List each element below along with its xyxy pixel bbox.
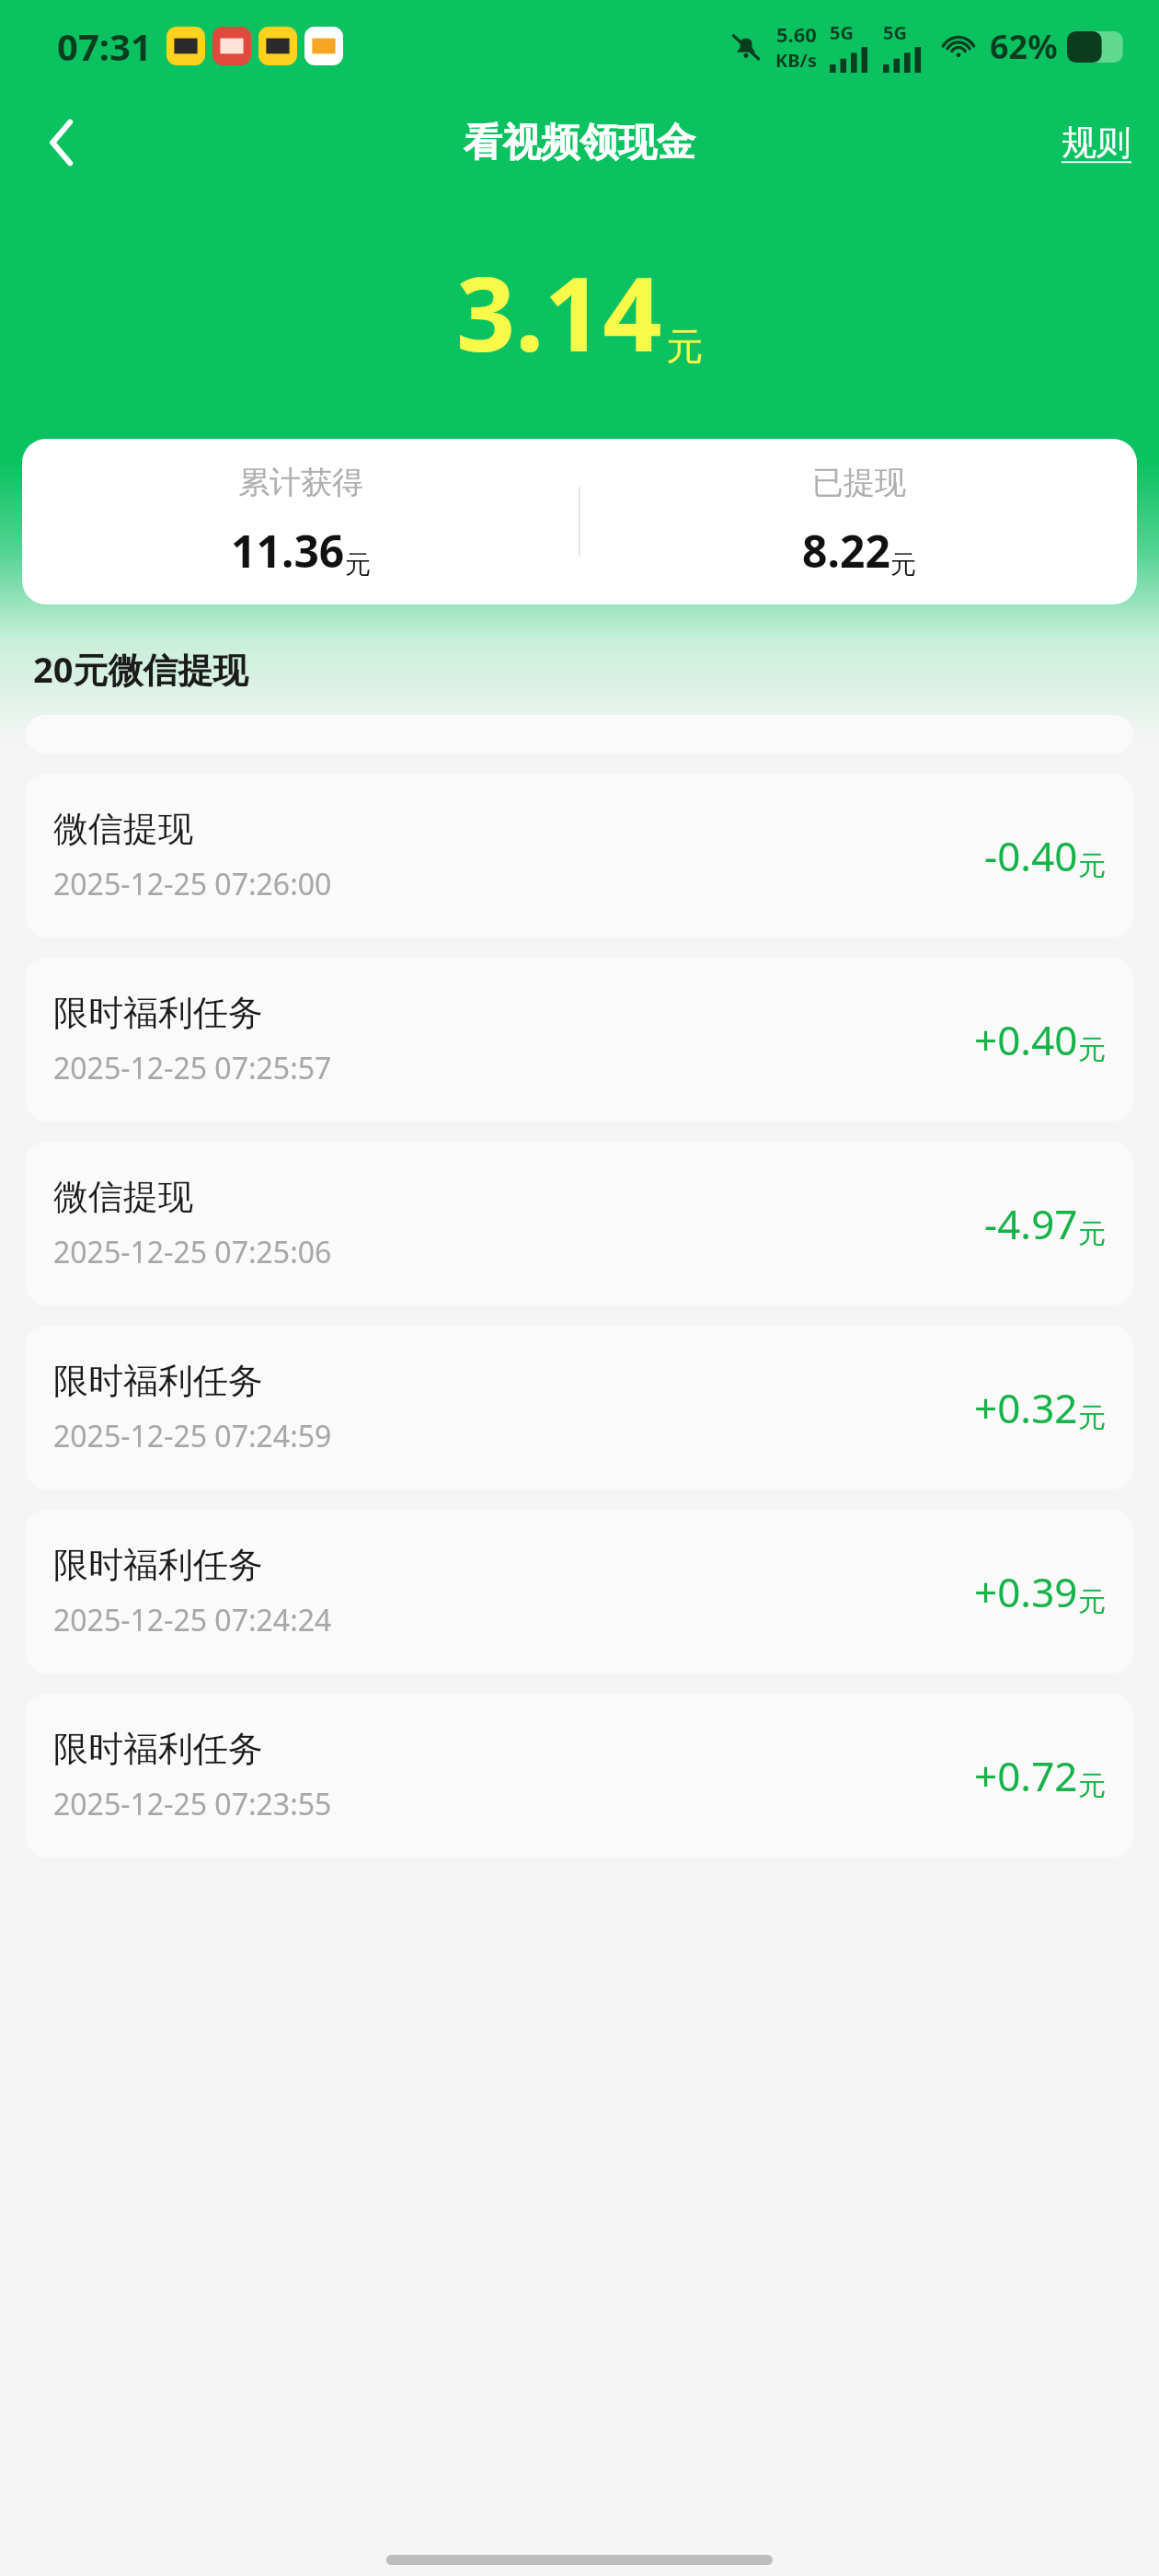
- staticText: 已提现: [812, 463, 906, 502]
- staticText: 2025-12-25 07:24:59: [53, 1416, 332, 1456]
- staticText: 微信提现: [53, 1175, 193, 1219]
- staticText: 微信提现: [53, 807, 193, 851]
- staticText: +0.40: [974, 1012, 1078, 1067]
- staticText: 11.36: [231, 521, 345, 581]
- staticText: 限时福利任务: [53, 1727, 263, 1771]
- staticText: 2025-12-25 07:25:06: [53, 1232, 332, 1272]
- staticText: 元: [1078, 1768, 1106, 1803]
- staticText: 2025-12-25 07:25:57: [53, 1048, 332, 1088]
- staticText: 元: [666, 323, 703, 369]
- button[interactable]: 累计获得: [22, 439, 1137, 604]
- staticText: 62%: [990, 24, 1058, 69]
- staticText: 看视频领现金: [464, 119, 695, 167]
- other: Wi-Fi: [938, 27, 979, 67]
- staticText: 元: [1078, 848, 1106, 883]
- staticText: 8.22: [802, 521, 890, 581]
- staticText: 元: [345, 548, 371, 581]
- button[interactable]: 限时福利任务: [26, 958, 1133, 1121]
- staticText: +0.39: [974, 1564, 1078, 1619]
- staticText: -0.40: [984, 828, 1078, 883]
- staticText: 2025-12-25 07:24:24: [53, 1600, 332, 1640]
- other: Silent: [729, 30, 763, 63]
- button[interactable]: 限时福利任务: [26, 1510, 1133, 1673]
- staticText: 2025-12-25 07:26:00: [53, 864, 332, 904]
- button[interactable]: 规则: [1061, 121, 1131, 165]
- staticText: 2025-12-25 07:23:55: [53, 1784, 332, 1824]
- staticText: 元: [1078, 1584, 1106, 1619]
- button[interactable]: 限时福利任务: [26, 1694, 1133, 1857]
- staticText: 07:31: [57, 21, 152, 71]
- staticText: 5.60: [776, 20, 817, 48]
- staticText: 规则: [1061, 121, 1131, 165]
- staticText: 限时福利任务: [53, 1359, 263, 1403]
- staticText: 5G: [883, 20, 907, 45]
- staticText: -4.97: [984, 1196, 1078, 1251]
- button[interactable]: Back: [26, 103, 105, 182]
- staticText: KB/s: [775, 48, 817, 73]
- staticText: 元: [890, 548, 916, 581]
- staticText: 累计获得: [238, 463, 363, 502]
- staticText: 限时福利任务: [53, 991, 263, 1035]
- staticText: 20元微信提现: [33, 645, 248, 693]
- staticText: 元: [1078, 1216, 1106, 1251]
- button[interactable]: 微信提现: [26, 774, 1133, 937]
- staticText: 元: [1078, 1032, 1106, 1067]
- staticText: +0.32: [974, 1380, 1078, 1435]
- button[interactable]: 微信提现: [26, 1142, 1133, 1305]
- staticText: +0.72: [974, 1748, 1078, 1803]
- button[interactable]: 限时福利任务: [26, 1326, 1133, 1489]
- staticText: 元: [1078, 1400, 1106, 1435]
- staticText: 3.14: [456, 241, 662, 382]
- staticText: 限时福利任务: [53, 1543, 263, 1587]
- staticText: 5G: [830, 20, 854, 45]
